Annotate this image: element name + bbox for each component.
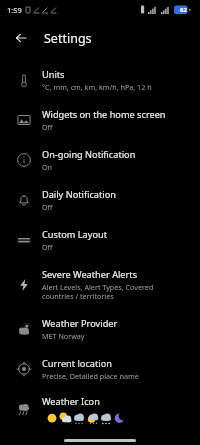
staticText: MET Norway <box>42 331 85 341</box>
staticText: Precise, Detailed place name <box>42 371 139 381</box>
staticText: 1:59 <box>7 5 22 15</box>
staticText: Weather Provider <box>42 317 118 330</box>
button[interactable]: Custom Layout <box>0 220 200 260</box>
staticText: Daily Notification <box>42 188 116 201</box>
staticText: Severe Weather Alerts <box>42 268 138 281</box>
button[interactable]: Weather Icon <box>0 389 200 427</box>
staticText: Widgets on the home screen <box>42 108 166 121</box>
staticText: Off <box>42 122 53 132</box>
staticText: Units <box>42 68 65 81</box>
button[interactable]: Weather Provider <box>0 309 200 349</box>
staticText: Off <box>42 242 53 252</box>
staticText: 62 <box>180 6 187 14</box>
button[interactable]: Units <box>0 60 200 100</box>
staticText: Off <box>42 202 53 212</box>
button[interactable]: Back <box>8 25 34 51</box>
staticText: Current location <box>42 357 112 370</box>
button[interactable]: On-going Notification <box>0 140 200 180</box>
staticText: Weather Icon <box>42 395 100 408</box>
button[interactable]: Widgets on the home screen <box>0 100 200 140</box>
button[interactable]: Daily Notification <box>0 180 200 220</box>
staticText: On <box>42 162 53 172</box>
staticText: °C, mm, cm, km, km/h, hPa, 12 h <box>42 82 152 92</box>
staticText: On-going Notification <box>42 148 136 161</box>
staticText: Settings <box>44 30 92 47</box>
staticText: Custom Layout <box>42 228 107 241</box>
button[interactable]: Current location <box>0 349 200 389</box>
staticText: Alert Levels, Alert Types, Covered count… <box>42 282 190 301</box>
button[interactable]: Severe Weather Alerts <box>0 260 200 309</box>
